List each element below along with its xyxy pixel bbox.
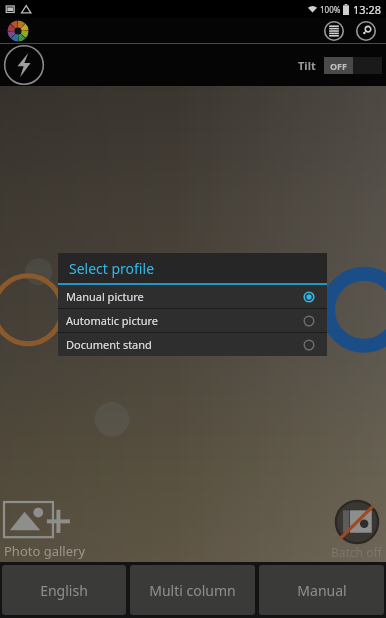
- staticText: Photo gallery: [4, 542, 86, 560]
- button[interactable]: Manual: [259, 565, 384, 615]
- staticText: Automatic picture: [66, 313, 159, 328]
- button[interactable]: Document stand: [58, 333, 327, 356]
- button[interactable]: Settings: [354, 19, 378, 43]
- staticText: 100%: [320, 4, 341, 15]
- staticText: Batch off: [331, 544, 382, 560]
- staticText: Select profile: [69, 259, 155, 278]
- button[interactable]: Tilt: [298, 57, 382, 74]
- staticText: Tilt: [298, 58, 316, 73]
- button[interactable]: Manual picture: [58, 285, 327, 308]
- staticText: Multi column: [149, 581, 236, 600]
- staticText: OFF: [330, 60, 348, 72]
- button[interactable]: Automatic picture: [58, 309, 327, 332]
- staticText: Document stand: [66, 337, 152, 352]
- staticText: English: [40, 581, 88, 600]
- button[interactable]: Multi column: [130, 565, 255, 615]
- staticText: Manual: [297, 581, 347, 600]
- staticText: Manual picture: [66, 289, 144, 304]
- button[interactable]: English: [2, 565, 126, 615]
- button[interactable]: Batch off: [331, 500, 382, 560]
- button[interactable]: Text lines: [322, 19, 346, 43]
- button[interactable]: Flash: [0, 44, 48, 86]
- staticText: 13:28: [353, 2, 382, 17]
- button[interactable]: Photo gallery: [4, 502, 86, 560]
